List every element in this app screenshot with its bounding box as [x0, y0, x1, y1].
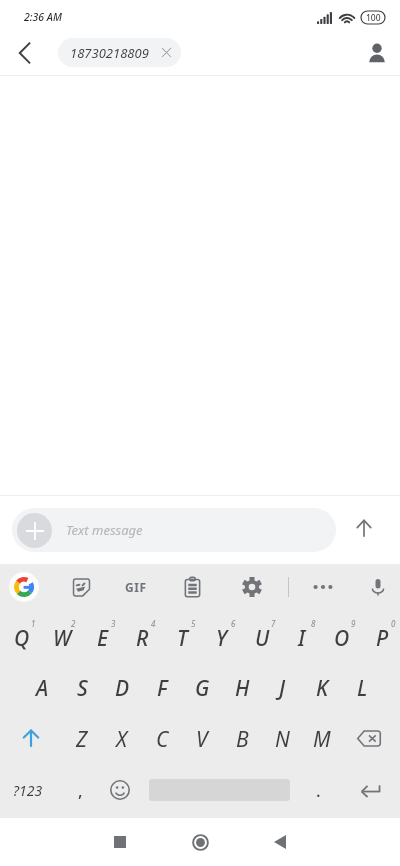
- button[interactable]: H: [220, 660, 260, 711]
- staticText: 1: [31, 618, 36, 629]
- staticText: 3: [111, 618, 116, 629]
- button[interactable]: G: [180, 660, 220, 711]
- staticText: Q: [14, 624, 30, 653]
- button[interactable]: Recents: [94, 818, 146, 866]
- button[interactable]: More options: [302, 566, 344, 608]
- staticText: 18730218809: [70, 44, 149, 62]
- staticText: Text message: [66, 521, 143, 539]
- button[interactable]: Stickers: [60, 566, 102, 608]
- staticText: B: [236, 725, 249, 754]
- button[interactable]: A: [20, 660, 60, 711]
- staticText: N: [275, 725, 290, 754]
- button[interactable]: Home: [174, 818, 226, 866]
- staticText: H: [235, 674, 250, 703]
- staticText: ,: [78, 779, 83, 802]
- button[interactable]: D: [100, 660, 140, 711]
- staticText: X: [116, 725, 128, 754]
- button[interactable]: Backspace: [340, 711, 400, 762]
- staticText: D: [115, 674, 130, 703]
- staticText: E: [97, 624, 108, 653]
- staticText: J: [279, 674, 286, 703]
- staticText: P: [376, 624, 389, 653]
- staticText: .: [316, 779, 321, 802]
- staticText: S: [77, 674, 88, 703]
- staticText: 6: [231, 618, 236, 629]
- button[interactable]: W: [40, 610, 80, 660]
- button[interactable]: I: [280, 610, 320, 660]
- button[interactable]: Shift: [0, 711, 60, 762]
- button[interactable]: V: [180, 711, 220, 762]
- staticText: 8: [311, 618, 316, 629]
- button[interactable]: X: [100, 711, 140, 762]
- staticText: 0: [391, 618, 396, 629]
- staticText: 100: [366, 12, 381, 24]
- button[interactable]: Add attachment: [17, 513, 52, 548]
- button[interactable]: Emoji: [100, 765, 140, 815]
- staticText: W: [53, 624, 72, 653]
- staticText: I: [298, 624, 306, 653]
- button[interactable]: J: [260, 660, 300, 711]
- button[interactable]: Z: [60, 711, 100, 762]
- button[interactable]: N: [260, 711, 300, 762]
- staticText: K: [316, 674, 329, 703]
- button[interactable]: 18730218809: [58, 38, 181, 67]
- staticText: C: [156, 725, 169, 754]
- staticText: U: [255, 624, 270, 653]
- button[interactable]: C: [140, 711, 180, 762]
- button[interactable]: T: [160, 610, 200, 660]
- button[interactable]: O: [320, 610, 360, 660]
- staticText: 5: [191, 618, 196, 629]
- button[interactable]: M: [300, 711, 340, 762]
- staticText: G: [195, 674, 210, 703]
- staticText: M: [313, 725, 331, 754]
- staticText: F: [157, 674, 168, 703]
- button[interactable]: U: [240, 610, 280, 660]
- button[interactable]: K: [300, 660, 340, 711]
- button[interactable]: P: [360, 610, 400, 660]
- button[interactable]: Settings: [231, 566, 273, 608]
- button[interactable]: R: [120, 610, 160, 660]
- button[interactable]: F: [140, 660, 180, 711]
- staticText: 9: [351, 618, 356, 629]
- staticText: T: [177, 624, 188, 653]
- button[interactable]: GIF: [115, 566, 157, 608]
- staticText: Z: [76, 725, 88, 754]
- staticText: 4: [151, 618, 156, 629]
- staticText: R: [136, 624, 149, 653]
- staticText: V: [196, 725, 208, 754]
- button[interactable]: S: [60, 660, 100, 711]
- staticText: Y: [216, 624, 228, 653]
- button[interactable]: Back: [3, 31, 47, 75]
- button[interactable]: .: [298, 765, 338, 815]
- button[interactable]: Send: [338, 502, 390, 554]
- staticText: O: [334, 624, 350, 653]
- staticText: 7: [271, 618, 276, 629]
- button[interactable]: Voice input: [357, 566, 399, 608]
- button[interactable]: L: [340, 660, 380, 711]
- staticText: L: [357, 674, 368, 703]
- staticText: A: [36, 674, 49, 703]
- button[interactable]: Add attachment: [12, 508, 336, 552]
- button[interactable]: ?123: [4, 765, 52, 815]
- button[interactable]: Google: [3, 566, 45, 608]
- staticText: ?123: [13, 781, 43, 800]
- button[interactable]: Back: [254, 818, 306, 866]
- button[interactable]: Clipboard: [171, 566, 213, 608]
- staticText: 2: [71, 618, 76, 629]
- button[interactable]: Contact details: [356, 32, 398, 74]
- staticText: 2:36 AM: [24, 10, 62, 24]
- button[interactable]: Y: [200, 610, 240, 660]
- button[interactable]: B: [220, 711, 260, 762]
- button[interactable]: Enter: [348, 765, 392, 815]
- button[interactable]: ,: [60, 765, 100, 815]
- staticText: GIF: [125, 579, 147, 595]
- button[interactable]: E: [80, 610, 120, 660]
- button[interactable]: Q: [0, 610, 40, 660]
